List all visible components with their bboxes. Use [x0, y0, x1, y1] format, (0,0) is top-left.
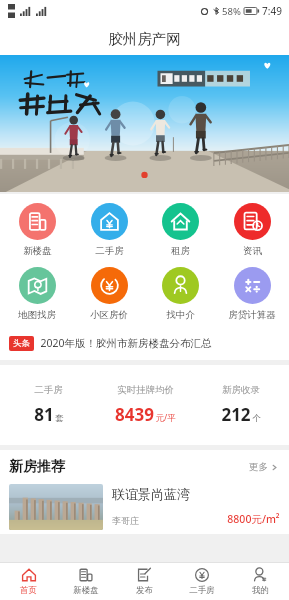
staticText: 资讯: [243, 245, 262, 257]
button[interactable]: 二手房: [173, 563, 231, 600]
button[interactable]: 联谊景尚蓝湾: [0, 484, 289, 534]
staticText: 胶州房产网: [108, 30, 181, 48]
button[interactable]: 新楼盘: [3, 200, 71, 260]
staticText: 租房: [171, 245, 190, 257]
staticText: 头条: [13, 338, 30, 349]
button[interactable]: 首页: [0, 563, 57, 600]
staticText: 实时挂牌均价: [117, 384, 174, 396]
button[interactable]: 二手房: [75, 200, 143, 260]
staticText: 8439: [115, 403, 154, 426]
staticText: 小区房价: [90, 309, 128, 321]
staticText: 新房收录: [222, 384, 260, 396]
staticText: 发布: [136, 585, 153, 596]
staticText: 新楼盘: [23, 245, 52, 257]
button[interactable]: 二手房: [0, 380, 97, 430]
staticText: 7:49: [262, 4, 282, 18]
staticText: 个: [252, 413, 261, 424]
staticText: 套: [55, 413, 64, 424]
staticText: 李哥庄: [112, 515, 139, 526]
staticText: 地图找房: [18, 309, 56, 321]
staticText: 二手房: [189, 585, 215, 596]
button[interactable]: 发布: [115, 563, 173, 600]
staticText: 58%: [222, 5, 241, 18]
staticText: 212: [221, 403, 251, 426]
staticText: 联谊景尚蓝湾: [112, 486, 190, 502]
staticText: 找中介: [166, 309, 195, 321]
button[interactable]: 更多: [247, 457, 280, 477]
staticText: 8800元/m²: [227, 512, 280, 526]
staticText: 我的: [252, 585, 269, 596]
staticText: 更多: [249, 461, 268, 473]
button[interactable]: 资讯: [218, 200, 286, 260]
staticText: 新楼盘: [73, 585, 99, 596]
button[interactable]: 新房收录: [193, 380, 289, 430]
staticText: 房贷计算器: [228, 309, 276, 321]
staticText: 二手房: [34, 384, 63, 396]
staticText: 首页: [20, 585, 37, 596]
staticText: 二手房: [95, 245, 124, 257]
button[interactable]: 租房: [146, 200, 214, 260]
button[interactable]: 实时挂牌均价: [97, 380, 193, 430]
staticText: 元/平: [155, 412, 176, 424]
button[interactable]: 地图找房: [3, 264, 71, 324]
button[interactable]: 新楼盘: [57, 563, 115, 600]
staticText: 81: [34, 403, 54, 426]
staticText: 2020年版！胶州市新房楼盘分布汇总: [40, 336, 212, 350]
button[interactable]: 我的: [231, 563, 289, 600]
button[interactable]: 房贷计算器: [218, 264, 286, 324]
staticText: 新房推荐: [9, 458, 65, 476]
button[interactable]: 头条: [0, 332, 289, 354]
button[interactable]: 找中介: [146, 264, 214, 324]
button[interactable]: 小区房价: [75, 264, 143, 324]
